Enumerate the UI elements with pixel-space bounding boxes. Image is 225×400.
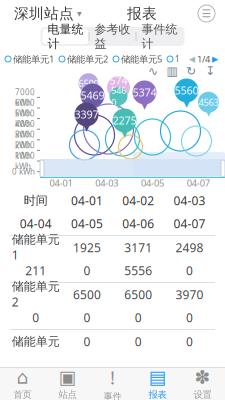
staticText: 0 — [186, 333, 193, 349]
staticText: 5556 — [124, 262, 152, 278]
staticText: 5743 — [109, 73, 127, 102]
staticText: ▼ — [86, 90, 91, 98]
staticText: 4000 kWh — [15, 119, 35, 140]
staticText: 站点 — [58, 389, 76, 400]
button[interactable]: ▣ — [45, 367, 90, 400]
staticText: ✽ — [194, 367, 210, 388]
staticText: 04-04 — [20, 215, 52, 231]
staticText: 6500 — [78, 77, 98, 89]
button[interactable]: ! — [90, 367, 135, 400]
staticText: 04-02 — [122, 192, 154, 208]
button[interactable]: ▤ — [135, 367, 180, 400]
staticText: 储能单元5 — [121, 53, 162, 65]
staticText: 2498 — [175, 239, 203, 255]
staticText: ◀ — [189, 54, 195, 64]
button[interactable]: Next page — [210, 54, 220, 64]
button[interactable]: ⌂ — [0, 367, 45, 400]
staticText: 5000 kWh — [15, 108, 35, 129]
staticText: 储能单元1 — [13, 53, 54, 65]
staticText: 0 — [186, 309, 193, 325]
button[interactable]: 事件统计 — [136, 29, 182, 44]
staticText: ▼ — [121, 129, 127, 139]
staticText: 04-03 — [95, 177, 118, 189]
staticText: 0 kWh — [12, 166, 35, 177]
staticText: 0 — [83, 262, 90, 278]
button[interactable]: Filter — [198, 5, 215, 22]
staticText: 0 — [135, 309, 142, 325]
staticText: ↻ — [186, 64, 196, 78]
staticText: 5374 — [132, 85, 156, 100]
staticText: 0 — [83, 333, 90, 349]
button[interactable]: Previous page — [187, 54, 197, 64]
staticText: ▤ — [148, 367, 166, 388]
staticText: 3000 kWh — [15, 129, 35, 150]
staticText: 储能单元 1 — [12, 232, 60, 263]
staticText: 事件 — [103, 391, 121, 400]
staticText: ▼ — [89, 104, 95, 114]
staticText: 0 — [83, 309, 90, 325]
staticText: 电量统计 — [47, 22, 83, 51]
staticText: 04-07 — [173, 215, 205, 231]
staticText: 04-03 — [173, 192, 205, 208]
staticText: 5560 — [174, 83, 198, 98]
staticText: ▥ — [166, 64, 177, 78]
button[interactable]: 电量统计 — [42, 29, 88, 44]
staticText: ▼ — [115, 96, 121, 105]
staticText: ∿ — [148, 64, 158, 78]
staticText: 报表 — [148, 389, 166, 400]
staticText: 参考收益 — [94, 22, 130, 51]
staticText: 1 — [175, 54, 180, 64]
button[interactable]: Refresh — [185, 65, 197, 77]
button[interactable]: Bar chart — [166, 65, 178, 77]
staticText: 储能单元 — [12, 334, 60, 349]
staticText: 1000 kWh — [15, 150, 35, 172]
staticText: 6000 kWh — [15, 97, 35, 119]
staticText: 6500 — [73, 286, 101, 302]
staticText: 首页 — [13, 389, 31, 400]
staticText: 2275 — [112, 113, 136, 128]
staticText: 0 — [32, 309, 39, 325]
staticText: 7000 kWh — [15, 87, 35, 108]
staticText: 5469 — [80, 88, 104, 103]
staticText: 3397 — [74, 107, 98, 122]
button[interactable]: Download — [204, 65, 216, 77]
button[interactable]: 参考收益 — [89, 29, 135, 44]
staticText: 时间 — [24, 193, 48, 208]
staticText: 5460 — [111, 84, 126, 109]
button[interactable]: ✽ — [180, 367, 225, 400]
button[interactable]: Line chart — [147, 65, 159, 77]
staticText: ▼ — [183, 99, 189, 109]
staticText: 0 — [186, 262, 193, 278]
staticText: ▼ — [141, 101, 147, 111]
staticText: 深圳站点 — [14, 4, 74, 22]
staticText: 1/4 — [197, 53, 210, 65]
staticText: 0 — [135, 333, 142, 349]
staticText: 1925 — [73, 239, 101, 255]
staticText: ⌂ — [16, 367, 28, 388]
staticText: ! — [110, 365, 115, 390]
staticText: ▼ — [83, 123, 89, 133]
staticText: ☰ — [201, 7, 211, 19]
staticText: ▾ — [77, 8, 82, 19]
staticText: ▣ — [58, 367, 76, 388]
staticText: 04-07 — [187, 177, 210, 189]
staticText: 04-06 — [122, 215, 154, 231]
staticText: 4563 — [198, 96, 218, 108]
staticText: 04-05 — [141, 177, 164, 189]
staticText: ▼ — [116, 102, 121, 110]
staticText: 6500 — [124, 286, 152, 302]
staticText: 事件统计 — [141, 22, 177, 51]
staticText: 3970 — [175, 286, 203, 302]
staticText: 04-05 — [71, 215, 103, 231]
staticText: 设置 — [193, 389, 211, 400]
button[interactable]: 深圳站点 — [10, 0, 86, 27]
staticText: 储能单元2 — [67, 53, 108, 65]
staticText: 04-01 — [71, 192, 103, 208]
staticText: 04-01 — [49, 177, 72, 189]
staticText: 2000 kWh — [15, 140, 35, 161]
staticText: 报表 — [127, 4, 157, 22]
staticText: ▶ — [212, 54, 218, 64]
staticText: ↧ — [205, 64, 215, 78]
staticText: 211 — [25, 262, 46, 278]
staticText: 储能单元 2 — [12, 279, 60, 310]
